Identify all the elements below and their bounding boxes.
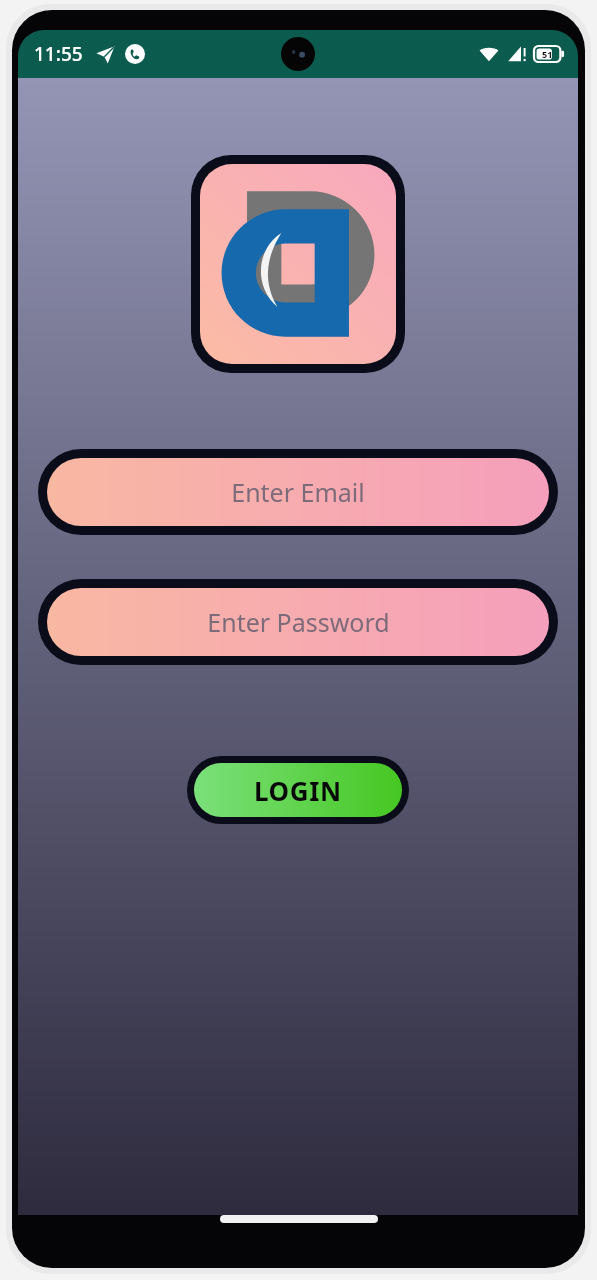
button[interactable]: Enter Password bbox=[47, 588, 549, 656]
staticText: 51 bbox=[542, 48, 553, 60]
staticText: 11:55 bbox=[34, 41, 83, 67]
button[interactable]: Enter Email bbox=[47, 458, 549, 526]
button[interactable]: LOGIN bbox=[194, 763, 402, 817]
staticText: LOGIN bbox=[254, 773, 342, 808]
staticText: Enter Password bbox=[207, 605, 390, 639]
other: App logo bbox=[200, 164, 396, 364]
staticText: Enter Email bbox=[231, 475, 365, 509]
